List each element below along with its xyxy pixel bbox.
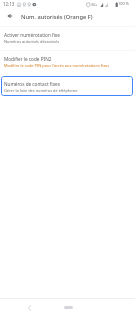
button[interactable]: Back <box>2 11 17 21</box>
staticText: Modifier le code PIN2 <box>4 56 52 62</box>
staticText: 100 % <box>118 1 129 6</box>
button[interactable]: Numéros de contact fixes <box>1 76 133 96</box>
staticText: Numéros de contact fixes <box>4 81 60 87</box>
staticText: 3G+ <box>91 2 98 6</box>
staticText: Gérer la liste des numéros de téléphone <box>4 88 78 93</box>
button[interactable]: Modifier le code PIN2 <box>0 51 135 75</box>
staticText: Modifier le code PIN pour l'accès aux nu… <box>4 63 110 68</box>
staticText: Activer numérotation fixe <box>4 32 60 38</box>
staticText: Numéros autorisés désactivés <box>4 39 60 44</box>
staticText: 12:13 <box>3 1 15 7</box>
button[interactable]: Back <box>22 301 36 314</box>
staticText: Num. autorisés (Orange F) <box>21 13 93 21</box>
button[interactable]: Home <box>58 301 79 314</box>
button[interactable]: Activer numérotation fixe <box>0 28 135 50</box>
